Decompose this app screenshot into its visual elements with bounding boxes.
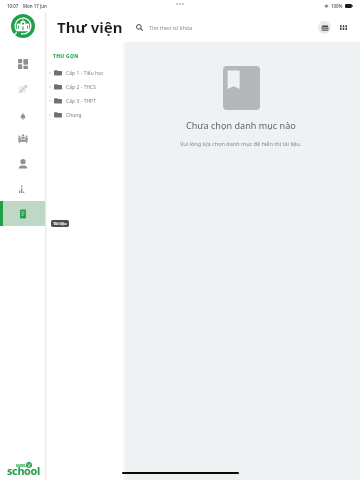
staticText: Mon 17 Jun	[23, 3, 47, 9]
staticText: Chưa chọn danh mục nào	[186, 119, 296, 131]
button[interactable]: Chung	[47, 108, 123, 122]
staticText: 100%	[331, 3, 343, 9]
button[interactable]: Cấp 3 - THPT	[47, 94, 123, 108]
staticText: 10:07	[7, 3, 19, 9]
button[interactable]: Notifications	[0, 101, 45, 126]
staticText: THU GỌN	[53, 53, 79, 60]
button[interactable]: Tài liệu	[0, 201, 45, 226]
staticText: MOBILE	[16, 464, 28, 468]
button[interactable]: Tìm theo từ khóa	[136, 17, 193, 37]
staticText: school	[7, 463, 40, 478]
staticText: Cấp 2 - THCS	[66, 84, 97, 91]
staticText: Cấp 1 - Tiểu học	[66, 70, 104, 77]
button[interactable]: Classes	[0, 126, 45, 151]
button[interactable]: Assignments	[0, 76, 45, 101]
staticText: Thư viện	[57, 17, 123, 37]
button[interactable]: Cấp 1 - Tiểu học	[47, 66, 123, 80]
button[interactable]: Dashboard	[0, 51, 45, 76]
staticText: Vui lòng lựa chọn danh mục để hiển thị t…	[180, 140, 302, 147]
button[interactable]: Grid view	[337, 21, 350, 34]
staticText: Chung	[66, 112, 82, 119]
staticText: Tìm theo từ khóa	[149, 24, 193, 31]
staticText: Tài liệu	[53, 221, 67, 227]
button[interactable]: List view	[318, 21, 331, 34]
button[interactable]: Reports	[0, 176, 45, 201]
button[interactable]: Cấp 2 - THCS	[47, 80, 123, 94]
staticText: Cấp 3 - THPT	[66, 98, 96, 105]
button[interactable]: Students	[0, 151, 45, 176]
